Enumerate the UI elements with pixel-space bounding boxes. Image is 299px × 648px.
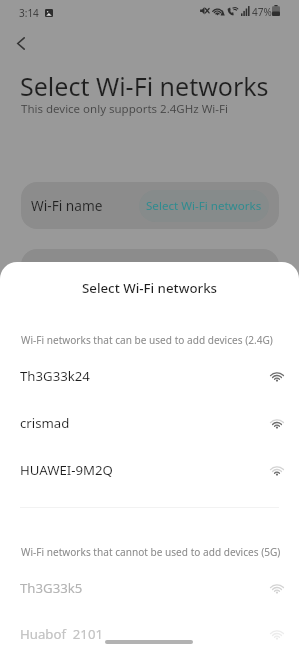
staticText: Select Wi-Fi networks bbox=[146, 198, 262, 214]
button[interactable]: Th3G33k24 bbox=[0, 356, 299, 396]
staticText: Wi-Fi networks that cannot be used to ad… bbox=[21, 545, 281, 559]
staticText: Huabof 2101 bbox=[20, 625, 103, 643]
staticText: This device only supports 2.4GHz Wi-Fi bbox=[21, 101, 228, 117]
staticText: Select Wi-Fi networks bbox=[20, 69, 269, 103]
button[interactable]: Th3G33k5 bbox=[0, 568, 299, 608]
staticText: 47% bbox=[252, 5, 272, 19]
staticText: HUAWEI-9M2Q bbox=[20, 461, 113, 479]
staticText: Wi-Fi name bbox=[31, 196, 103, 215]
staticText: 3:14 bbox=[19, 6, 39, 20]
staticText: Wi-Fi networks that can be used to add d… bbox=[21, 333, 273, 347]
staticText: crismad bbox=[20, 414, 70, 432]
button[interactable]: Huabof 2101 bbox=[0, 614, 299, 648]
staticText: Th3G33k24 bbox=[20, 367, 90, 385]
button[interactable]: Back bbox=[7, 29, 35, 57]
button[interactable]: Select Wi-Fi networks bbox=[139, 190, 269, 222]
staticText: Select Wi-Fi networks bbox=[0, 279, 299, 297]
staticText: Th3G33k5 bbox=[20, 579, 83, 597]
button[interactable]: crismad bbox=[0, 403, 299, 443]
button[interactable]: HUAWEI-9M2Q bbox=[0, 450, 299, 490]
